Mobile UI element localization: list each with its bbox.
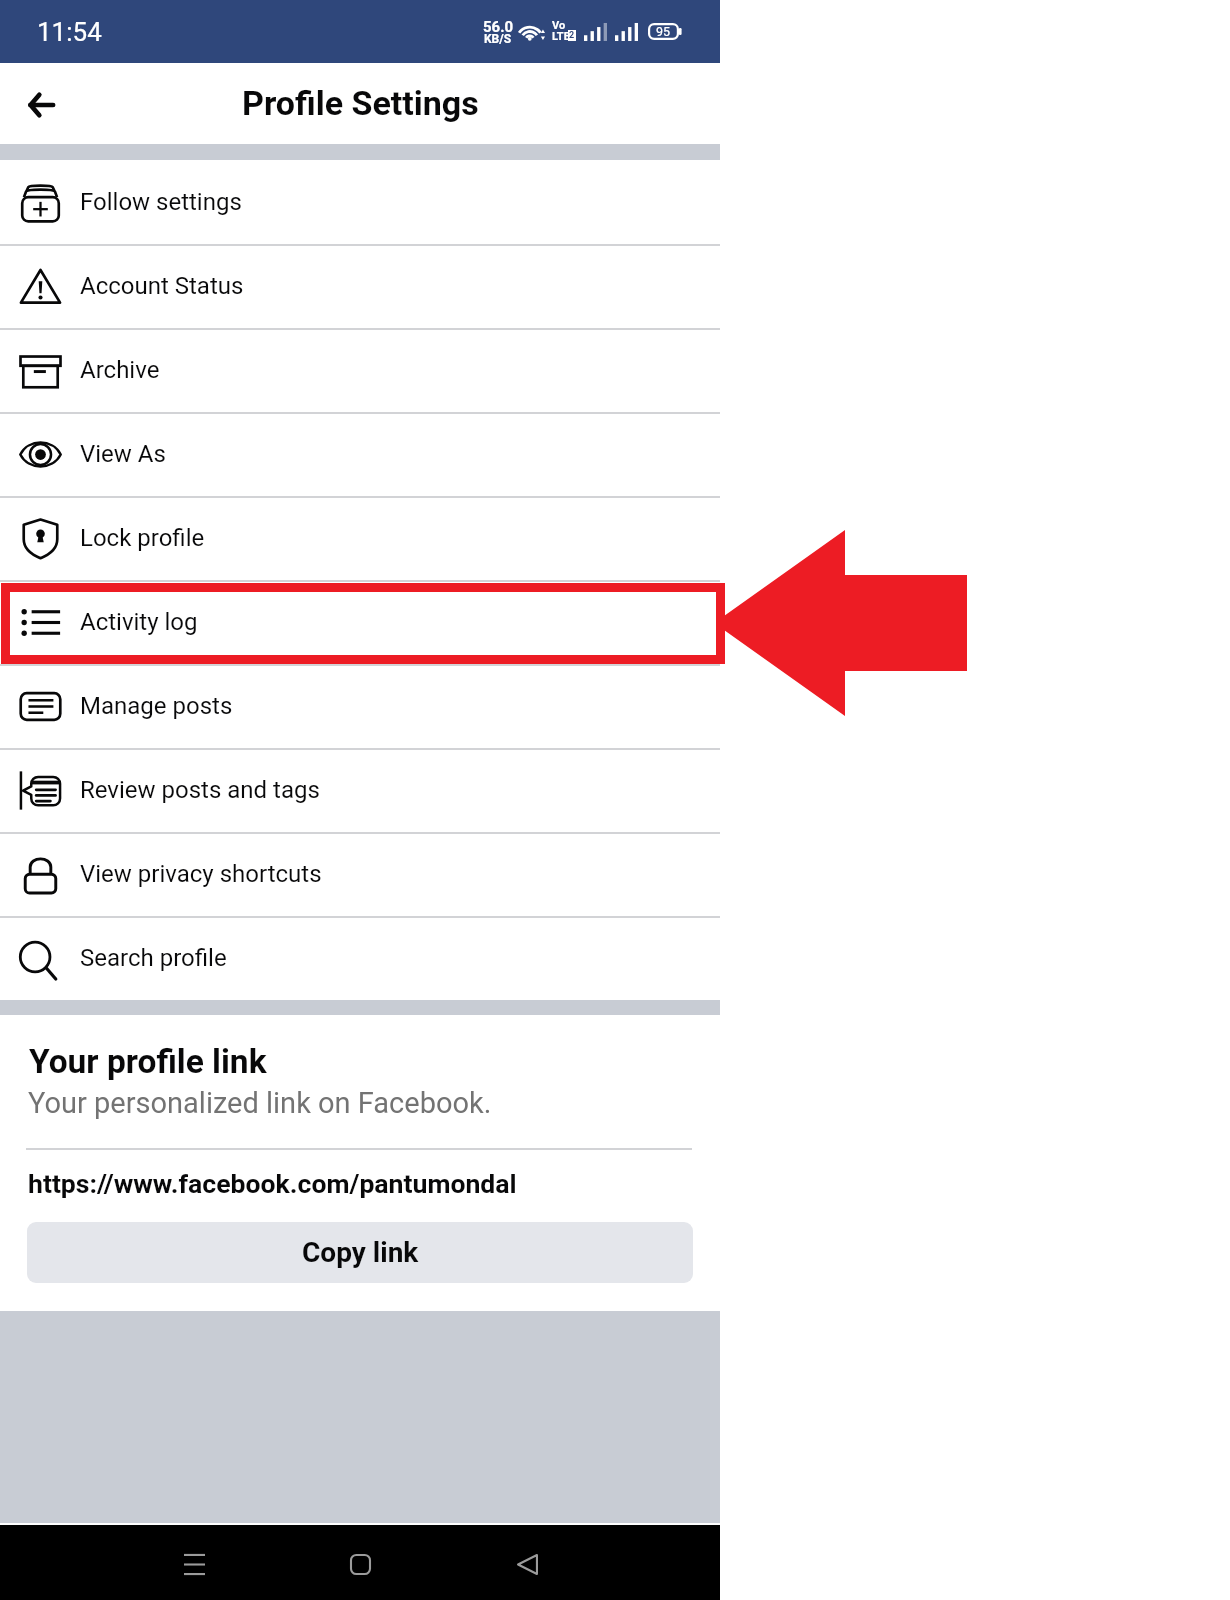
- staticText: Activity log: [80, 608, 198, 636]
- staticText: Archive: [80, 356, 160, 384]
- button[interactable]: Back: [497, 1534, 557, 1594]
- button[interactable]: Manage posts: [0, 664, 720, 748]
- button[interactable]: Review posts and tags: [0, 748, 720, 832]
- staticText: Vo: [552, 19, 566, 32]
- staticText: 95: [656, 24, 671, 39]
- button[interactable]: Back: [10, 73, 72, 135]
- staticText: Lock profile: [80, 524, 205, 552]
- staticText: Profile Settings: [242, 83, 479, 123]
- staticText: Search profile: [80, 944, 227, 972]
- staticText: Your personalized link on Facebook.: [28, 1086, 492, 1120]
- staticText: Manage posts: [80, 692, 233, 720]
- staticText: https://www.facebook.com/pantumondal: [28, 1168, 517, 1199]
- button[interactable]: Search profile: [0, 916, 720, 1000]
- staticText: 11:54: [37, 17, 102, 47]
- staticText: 56.0: [483, 18, 514, 36]
- staticText: Review posts and tags: [80, 776, 320, 804]
- staticText: 2: [569, 30, 575, 41]
- button[interactable]: Lock profile: [0, 496, 720, 580]
- staticText: View privacy shortcuts: [80, 860, 322, 888]
- staticText: Account Status: [80, 272, 244, 300]
- staticText: Follow settings: [80, 188, 242, 216]
- button[interactable]: Recent apps: [164, 1534, 224, 1594]
- button[interactable]: Home: [330, 1534, 390, 1594]
- button[interactable]: Account Status: [0, 244, 720, 328]
- staticText: View As: [80, 440, 166, 468]
- button[interactable]: View As: [0, 412, 720, 496]
- button[interactable]: Activity log: [0, 580, 720, 664]
- button[interactable]: Copy link: [27, 1222, 693, 1283]
- staticText: KB/S: [484, 32, 512, 46]
- staticText: Your profile link: [29, 1042, 267, 1081]
- staticText: Copy link: [302, 1236, 419, 1269]
- button[interactable]: Follow settings: [0, 160, 720, 244]
- button[interactable]: Archive: [0, 328, 720, 412]
- staticText: LTE: [552, 30, 570, 43]
- button[interactable]: View privacy shortcuts: [0, 832, 720, 916]
